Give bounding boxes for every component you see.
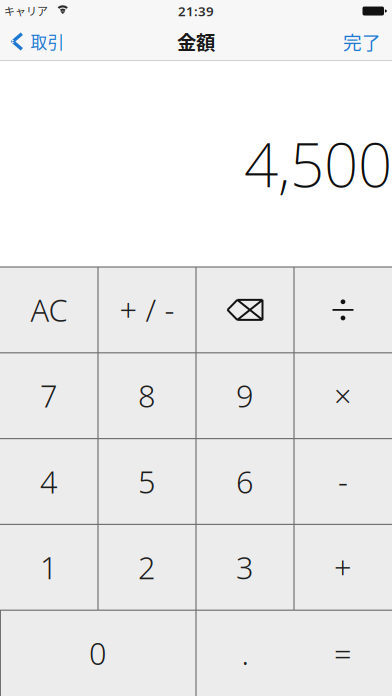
staticText: キャリア	[4, 3, 48, 19]
button[interactable]: .	[196, 610, 294, 696]
button[interactable]: 1	[0, 524, 98, 610]
button[interactable]: 9	[196, 353, 294, 439]
button[interactable]: 3	[196, 524, 294, 610]
staticText: 金額	[177, 27, 215, 55]
staticText: 8	[138, 375, 156, 416]
button[interactable]: Delete	[196, 267, 294, 353]
button[interactable]: 4	[0, 439, 98, 524]
staticText: .	[241, 633, 248, 673]
staticText: 5	[138, 461, 156, 502]
staticText: 取引	[31, 29, 65, 53]
staticText: +	[334, 547, 352, 588]
staticText: + / -	[119, 289, 174, 330]
button[interactable]: +	[294, 524, 392, 610]
staticText: 0	[89, 633, 107, 673]
staticText: 3	[236, 547, 254, 588]
button[interactable]: 8	[98, 353, 196, 439]
staticText: 9	[236, 375, 254, 416]
button[interactable]: 0	[0, 610, 196, 696]
staticText: 2	[138, 547, 156, 588]
button[interactable]: + / -	[98, 267, 196, 353]
button[interactable]: =	[294, 610, 392, 696]
staticText: 7	[40, 375, 58, 416]
staticText: 6	[236, 461, 254, 502]
button[interactable]: 6	[196, 439, 294, 524]
staticText: -	[338, 461, 348, 502]
button[interactable]: 7	[0, 353, 98, 439]
button[interactable]: -	[294, 439, 392, 524]
button[interactable]: ×	[294, 353, 392, 439]
button[interactable]: AC	[0, 267, 98, 353]
staticText: 4,500	[244, 124, 392, 204]
staticText: AC	[30, 289, 67, 330]
staticText: 4	[40, 461, 58, 502]
button[interactable]: 5	[98, 439, 196, 524]
staticText: 21:39	[178, 2, 214, 20]
button[interactable]: Divide	[294, 267, 392, 353]
staticText: 完了	[343, 28, 381, 55]
button[interactable]: 2	[98, 524, 196, 610]
staticText: ×	[334, 375, 352, 416]
button[interactable]: 完了	[331, 22, 392, 61]
button[interactable]: 取引	[0, 22, 75, 61]
staticText: =	[334, 633, 352, 673]
staticText: 1	[40, 547, 58, 588]
